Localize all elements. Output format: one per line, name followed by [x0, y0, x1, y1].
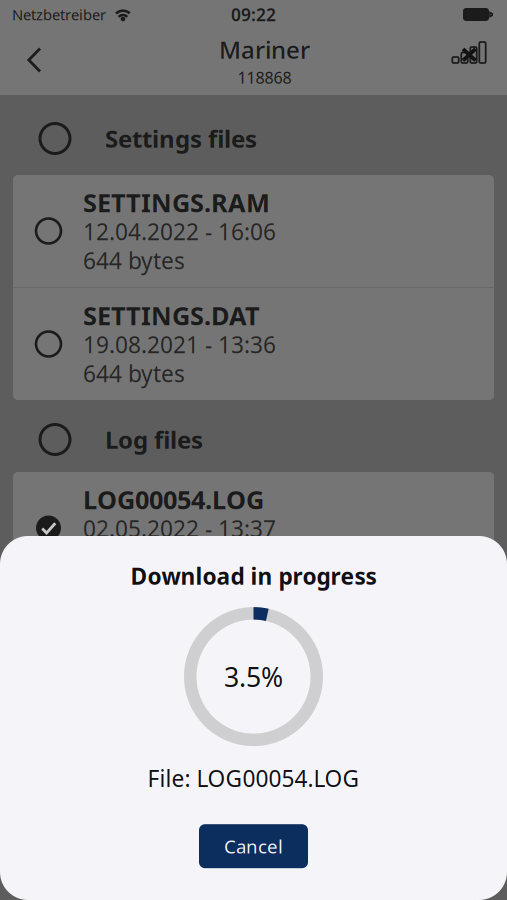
staticText: SETTINGS.RAM [83, 186, 270, 219]
button[interactable]: LOG00054.LOG [13, 472, 494, 584]
staticText: SETTINGS.DAT [83, 299, 260, 332]
staticText: Download in progress [130, 561, 376, 591]
staticText: File: LOG00054.LOG [147, 763, 359, 793]
staticText: 09:22 [231, 3, 276, 26]
button[interactable]: Back [0, 36, 61, 88]
staticText: 118868 [237, 67, 291, 88]
staticText: Netzbetreiber [12, 5, 106, 24]
button[interactable]: SETTINGS.RAM [13, 175, 494, 287]
staticText: 12.04.2022 - 16:06 [83, 216, 276, 246]
button[interactable]: SETTINGS.DAT [13, 288, 494, 400]
button[interactable]: Log files [0, 400, 507, 472]
staticText: 19.08.2021 - 13:36 [83, 329, 276, 359]
staticText: Cancel [224, 834, 283, 859]
staticText: LOG00054.LOG [83, 483, 264, 516]
staticText: 644 bytes [83, 358, 185, 388]
staticText: 3.5% [224, 659, 283, 694]
button[interactable]: Cancel [199, 824, 308, 868]
button[interactable]: Settings files [0, 95, 507, 175]
staticText: Settings files [105, 123, 257, 154]
button[interactable]: Device connection lost [437, 35, 507, 89]
staticText: 1234 bytes [83, 542, 198, 572]
staticText: Log files [105, 424, 203, 455]
staticText: 644 bytes [83, 245, 185, 275]
staticText: 02.05.2022 - 13:37 [83, 513, 276, 543]
staticText: Mariner [219, 34, 310, 65]
